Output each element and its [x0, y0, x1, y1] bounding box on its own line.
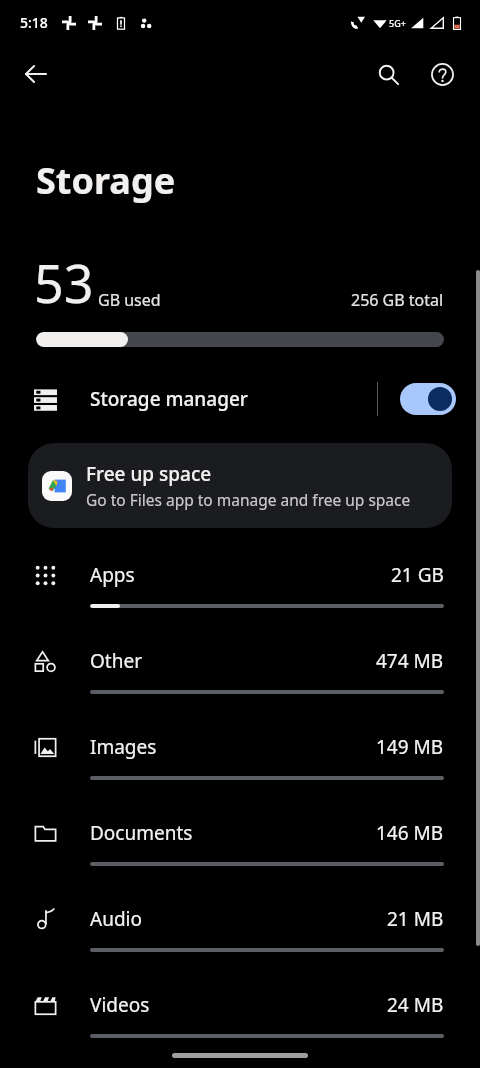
staticText: 146 MB [376, 820, 444, 846]
staticText: 21 MB [387, 906, 444, 932]
button[interactable]: Search [364, 50, 412, 98]
staticText: Other [90, 648, 143, 674]
staticText: Storage [36, 156, 176, 205]
staticText: Apps [90, 562, 135, 588]
button[interactable]: Apps [0, 546, 480, 632]
staticText: GB used [98, 289, 161, 311]
button[interactable]: Storage manager [0, 371, 480, 427]
staticText: 24 MB [387, 992, 444, 1018]
staticText: Go to Files app to manage and free up sp… [86, 489, 411, 510]
staticText: Documents [90, 820, 193, 846]
button[interactable]: Back [12, 50, 60, 98]
staticText: 5:18 [20, 13, 48, 32]
button[interactable]: Audio [0, 890, 480, 976]
staticText: Images [90, 734, 157, 760]
button[interactable]: Help [418, 50, 466, 98]
staticText: Audio [90, 906, 142, 932]
button[interactable]: Free up space [28, 443, 452, 528]
staticText: Free up space [86, 461, 212, 487]
staticText: 5G+ [389, 17, 406, 29]
staticText: Storage manager [90, 386, 248, 412]
staticText: 53 [34, 247, 94, 318]
staticText: 474 MB [376, 648, 444, 674]
staticText: Videos [90, 992, 150, 1018]
button[interactable]: Other [0, 632, 480, 718]
staticText: 149 MB [376, 734, 444, 760]
staticText: 256 GB total [351, 289, 444, 311]
button[interactable]: Images [0, 718, 480, 804]
staticText: 21 GB [391, 562, 444, 588]
button[interactable]: Videos [0, 976, 480, 1062]
button[interactable]: Storage manager toggle [400, 383, 456, 415]
button[interactable]: Documents [0, 804, 480, 890]
